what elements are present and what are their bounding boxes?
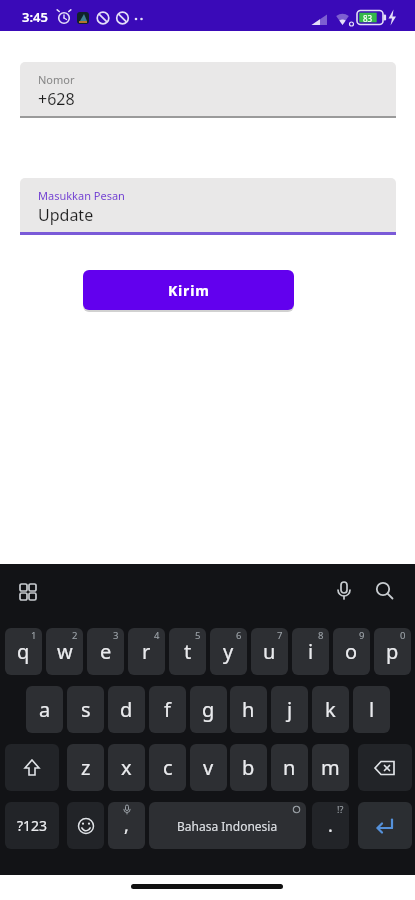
button[interactable]: x <box>108 744 145 791</box>
staticText: x <box>121 754 132 781</box>
staticText: a <box>39 696 51 723</box>
staticText: Masukkan Pesan <box>38 188 125 203</box>
button[interactable]: Kirim <box>83 270 294 310</box>
button[interactable]: b <box>230 744 267 791</box>
staticText: w <box>57 638 73 665</box>
button[interactable]: v <box>190 744 227 791</box>
staticText: l <box>369 696 375 723</box>
button[interactable]: s <box>67 686 104 733</box>
button[interactable]: g <box>190 686 227 733</box>
staticText: n <box>283 754 296 781</box>
button[interactable]: e <box>87 628 124 675</box>
staticText: s <box>81 696 91 723</box>
staticText: r <box>142 638 151 665</box>
staticText: d <box>120 696 133 723</box>
staticText: 3 <box>113 629 119 642</box>
staticText: 2 <box>72 629 78 642</box>
staticText: t <box>184 638 192 665</box>
staticText: m <box>321 754 340 781</box>
button[interactable]: j <box>271 686 308 733</box>
staticText: p <box>386 638 399 665</box>
staticText: f <box>164 696 171 723</box>
staticText: q <box>17 638 30 665</box>
button[interactable]: h <box>230 686 267 733</box>
button[interactable] <box>5 744 59 791</box>
staticText: Nomor <box>38 72 75 87</box>
staticText: +628 <box>38 88 75 110</box>
staticText: 7 <box>277 629 283 642</box>
button[interactable]: w <box>46 628 83 675</box>
staticText: k <box>325 696 336 723</box>
button[interactable]: ?123 <box>5 802 59 849</box>
staticText: , <box>124 813 129 838</box>
button[interactable]: u <box>251 628 288 675</box>
button[interactable] <box>67 802 104 849</box>
staticText: j <box>287 696 293 723</box>
button[interactable] <box>358 744 412 791</box>
button[interactable]: l <box>353 686 390 733</box>
button[interactable]: n <box>271 744 308 791</box>
staticText: z <box>81 754 91 781</box>
staticText: e <box>100 638 112 665</box>
staticText: 0 <box>400 629 406 642</box>
button[interactable]: f <box>149 686 186 733</box>
button[interactable]: Bahasa Indonesia <box>149 802 306 849</box>
button[interactable]: . <box>312 802 349 849</box>
button[interactable]: p <box>374 628 411 675</box>
staticText: 1 <box>31 629 37 642</box>
button[interactable]: a <box>26 686 63 733</box>
button[interactable]: k <box>312 686 349 733</box>
staticText: 5 <box>195 629 201 642</box>
button[interactable]: r <box>128 628 165 675</box>
button[interactable]: Masukkan Pesan <box>20 178 396 235</box>
staticText: o <box>345 638 358 665</box>
staticText: h <box>242 696 255 723</box>
button[interactable]: o <box>333 628 370 675</box>
button[interactable]: Nomor <box>20 62 396 118</box>
staticText: Bahasa Indonesia <box>177 818 278 834</box>
button[interactable]: z <box>67 744 104 791</box>
staticText: i <box>308 638 314 665</box>
staticText: 8 <box>318 629 324 642</box>
staticText: Update <box>38 204 94 226</box>
button[interactable]: i <box>292 628 329 675</box>
staticText: Kirim <box>168 281 210 300</box>
button[interactable]: m <box>312 744 349 791</box>
button[interactable]: , <box>108 802 145 849</box>
button[interactable]: d <box>108 686 145 733</box>
staticText: u <box>263 638 276 665</box>
staticText: 3:45 <box>22 8 48 26</box>
staticText: ?123 <box>17 816 48 835</box>
staticText: 83 <box>363 13 373 24</box>
staticText: y <box>223 638 234 665</box>
staticText: g <box>202 696 215 723</box>
staticText: b <box>242 754 255 781</box>
button[interactable]: c <box>149 744 186 791</box>
button[interactable]: q <box>5 628 42 675</box>
staticText: 4 <box>154 629 160 642</box>
button[interactable]: t <box>169 628 206 675</box>
staticText: v <box>203 754 214 781</box>
button[interactable] <box>358 802 412 849</box>
staticText: 9 <box>359 629 365 642</box>
staticText: !? <box>337 803 344 815</box>
button[interactable]: y <box>210 628 247 675</box>
staticText: . <box>328 813 333 838</box>
staticText: c <box>163 754 173 781</box>
staticText: 6 <box>236 629 242 642</box>
